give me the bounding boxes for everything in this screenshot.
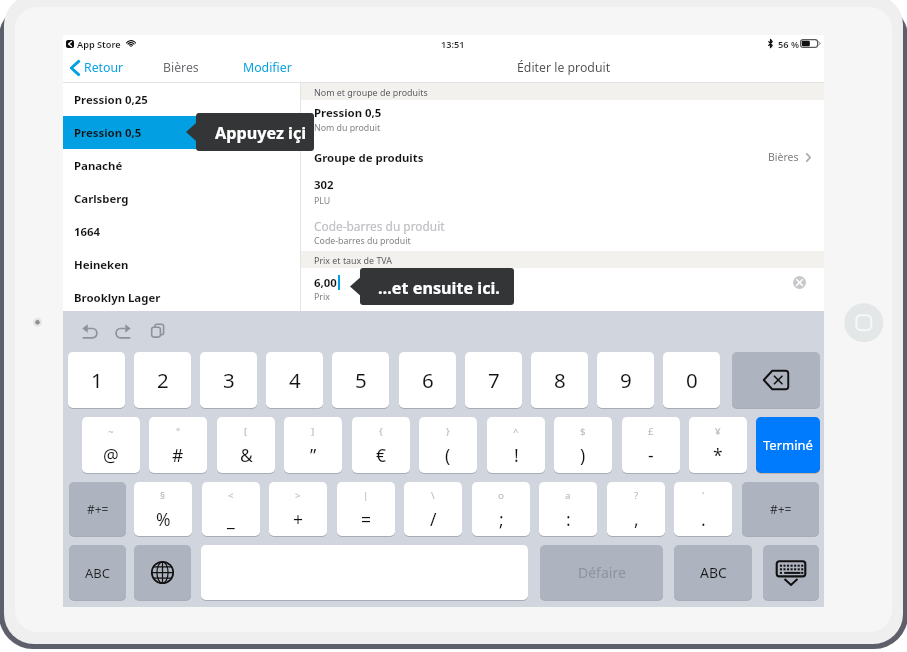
button[interactable]: Masquer le clavier (763, 545, 819, 600)
button[interactable]: 8 (531, 352, 588, 408)
staticText: 3 (223, 366, 235, 394)
button[interactable]: | (337, 482, 395, 536)
staticText: < (228, 489, 234, 502)
staticText: { (379, 425, 383, 438)
button[interactable]: 2 (134, 352, 191, 408)
button[interactable]: Pression 0,25 (63, 83, 301, 116)
button[interactable]: Heineken (63, 248, 301, 281)
button[interactable]: £ (622, 417, 680, 473)
button[interactable]: Retour vers App Store (66, 40, 74, 48)
staticText: PLU (314, 195, 331, 207)
button[interactable]: \ (404, 482, 462, 536)
button[interactable]: o (472, 482, 530, 536)
button[interactable]: ' (674, 482, 732, 536)
button[interactable]: Brooklyn Lager (63, 281, 301, 314)
staticText: ° (176, 425, 181, 438)
button[interactable]: #+= (742, 482, 819, 536)
button[interactable]: [ (217, 417, 275, 473)
staticText: 13:51 (441, 38, 465, 51)
button[interactable]: 1 (68, 352, 125, 408)
staticText: ] (311, 425, 315, 438)
staticText: £ (648, 425, 654, 438)
button[interactable]: ? (607, 482, 665, 536)
button[interactable]: ] (284, 417, 342, 473)
button[interactable]: ABC (69, 545, 126, 600)
button[interactable]: ¥ (689, 417, 747, 473)
button[interactable]: a (539, 482, 597, 536)
button[interactable]: Changer de clavier (134, 545, 191, 600)
staticText: > (295, 489, 301, 502)
button[interactable]: Terminé (756, 417, 820, 473)
button[interactable]: Pression 0,5 (63, 116, 301, 149)
button[interactable]: 9 (597, 352, 654, 408)
staticText: Bières (163, 59, 199, 76)
button[interactable]: 4 (266, 352, 323, 408)
staticText: Pression 0,5 (74, 125, 142, 141)
button[interactable]: $ (554, 417, 612, 473)
button[interactable]: } (419, 417, 477, 473)
button[interactable]: Annuler (82, 324, 98, 339)
button[interactable]: Rétablir (115, 324, 131, 339)
staticText: Éditer le produit (517, 59, 611, 76)
button[interactable]: Supprimer (732, 352, 820, 408)
button[interactable]: ABC (674, 545, 752, 600)
staticText: 8 (554, 366, 566, 394)
staticText: 6 (422, 366, 434, 394)
staticText: Modifier (243, 59, 292, 76)
staticText: @ (103, 443, 119, 467)
button[interactable]: Défaire (540, 545, 663, 600)
button[interactable]: ° (149, 417, 207, 473)
button[interactable]: 1664 (63, 215, 301, 248)
button[interactable]: Coller (151, 323, 165, 338)
button[interactable]: 6 (399, 352, 456, 408)
button[interactable]: ^ (487, 417, 545, 473)
staticText: 302 (314, 177, 334, 193)
button[interactable]: 3 (200, 352, 257, 408)
staticText: ) (580, 443, 586, 467)
button[interactable]: 5 (332, 352, 389, 408)
staticText: 56 % (778, 38, 799, 51)
staticText: . (701, 507, 706, 531)
staticText: _ (227, 507, 235, 531)
button[interactable]: Effacer (793, 276, 806, 289)
staticText: Pression 0,5 (314, 105, 382, 121)
button[interactable]: > (269, 482, 327, 536)
button[interactable]: #+= (69, 482, 126, 536)
staticText: 2 (157, 366, 169, 394)
staticText: + (293, 507, 304, 531)
button[interactable]: § (134, 482, 192, 536)
button[interactable]: Carlsberg (63, 182, 301, 215)
staticText: Nom et groupe de produits (314, 86, 428, 98)
button[interactable]: < (202, 482, 260, 536)
staticText: o (498, 489, 504, 502)
staticText: #+= (87, 501, 109, 517)
staticText: : (566, 507, 571, 531)
staticText: , (634, 507, 639, 531)
staticText: / (430, 507, 437, 531)
staticText: 0 (686, 366, 698, 394)
button[interactable]: Retour (65, 52, 129, 83)
staticText: Défaire (578, 563, 626, 582)
button[interactable]: Panaché (63, 149, 301, 182)
button[interactable]: Groupe de produits (301, 143, 824, 171)
staticText: Carlsberg (74, 191, 129, 207)
staticText: - (648, 443, 654, 467)
staticText: & (240, 443, 253, 467)
button[interactable]: 0 (663, 352, 720, 408)
staticText: Terminé (763, 436, 813, 454)
button[interactable]: Modifier (238, 52, 297, 83)
button[interactable]: { (352, 417, 410, 473)
staticText: | (363, 489, 369, 502)
staticText: Nom du produit (314, 122, 381, 134)
staticText: € (376, 443, 387, 467)
staticText: a (565, 489, 571, 502)
staticText: 6,00 (314, 275, 337, 291)
staticText: \ (431, 489, 435, 502)
staticText: [ (244, 425, 248, 438)
button[interactable]: 7 (465, 352, 522, 408)
staticText: * (713, 443, 723, 467)
staticText: § (160, 489, 166, 502)
button[interactable]: ~ (82, 417, 140, 473)
staticText: ABC (85, 564, 110, 582)
